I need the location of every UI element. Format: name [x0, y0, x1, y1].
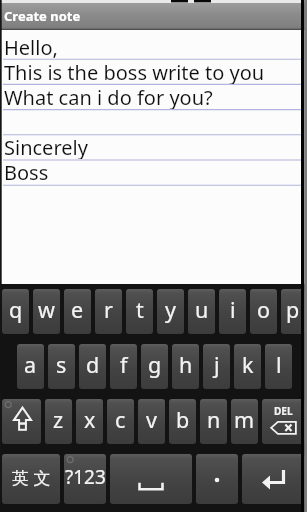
button[interactable]: c [107, 399, 134, 444]
staticText: g [148, 350, 162, 379]
button[interactable]: m [231, 399, 258, 444]
staticText: q [9, 295, 23, 324]
button[interactable]: Period [196, 454, 238, 504]
button[interactable]: u [188, 289, 215, 334]
staticText: m [234, 405, 255, 434]
button[interactable]: g [141, 344, 168, 389]
staticText: v [146, 405, 157, 434]
button[interactable]: s [48, 344, 75, 389]
staticText: 英 文 [12, 466, 51, 489]
staticText: Hello, [4, 34, 58, 59]
button[interactable]: Shift [2, 399, 41, 444]
button[interactable]: o [250, 289, 277, 334]
staticText: y [165, 295, 176, 324]
staticText: k [242, 350, 254, 379]
button[interactable]: e [64, 289, 91, 334]
button[interactable]: i [219, 289, 246, 334]
staticText: o [257, 295, 271, 324]
button[interactable]: v [138, 399, 165, 444]
button[interactable]: p [281, 289, 305, 334]
staticText: x [84, 405, 96, 434]
staticText: Create note [4, 7, 81, 25]
staticText: u [195, 295, 209, 324]
staticText: n [207, 405, 221, 434]
staticText: h [179, 350, 193, 379]
button[interactable]: b [169, 399, 196, 444]
staticText: b [176, 405, 190, 434]
button[interactable]: f [110, 344, 137, 389]
button[interactable]: Language [2, 454, 60, 504]
staticText: j [214, 350, 220, 379]
button[interactable]: n [200, 399, 227, 444]
button[interactable]: h [172, 344, 199, 389]
staticText: a [24, 350, 37, 379]
staticText: r [104, 295, 113, 324]
button[interactable]: t [126, 289, 153, 334]
button[interactable]: k [234, 344, 261, 389]
staticText: d [86, 350, 100, 379]
staticText: Sincerely [4, 134, 88, 159]
staticText: Boss [4, 159, 49, 184]
button[interactable]: z [45, 399, 72, 444]
staticText: t [136, 295, 144, 324]
button[interactable]: y [157, 289, 184, 334]
staticText: ?123 [65, 464, 106, 490]
button[interactable]: q [2, 289, 29, 334]
button[interactable]: Space [110, 454, 192, 504]
staticText: c [115, 405, 126, 434]
button[interactable]: d [79, 344, 106, 389]
staticText: s [56, 350, 67, 379]
staticText: f [120, 350, 128, 379]
staticText: This is the boss write to you [4, 59, 265, 84]
staticText: DEL [274, 404, 293, 418]
button[interactable]: Symbols [64, 454, 106, 504]
button[interactable]: Enter [242, 454, 305, 504]
button[interactable]: l [265, 344, 292, 389]
button[interactable]: x [76, 399, 103, 444]
staticText: i [230, 295, 236, 324]
button[interactable]: a [17, 344, 44, 389]
staticText: w [38, 295, 55, 324]
button[interactable]: r [95, 289, 122, 334]
staticText: e [71, 295, 84, 324]
button[interactable]: j [203, 344, 230, 389]
staticText: l [276, 350, 282, 379]
staticText: What can i do for you? [4, 84, 213, 109]
staticText: z [53, 405, 64, 434]
staticText: p [286, 295, 300, 324]
button[interactable]: Delete [262, 399, 305, 444]
button[interactable]: w [33, 289, 60, 334]
